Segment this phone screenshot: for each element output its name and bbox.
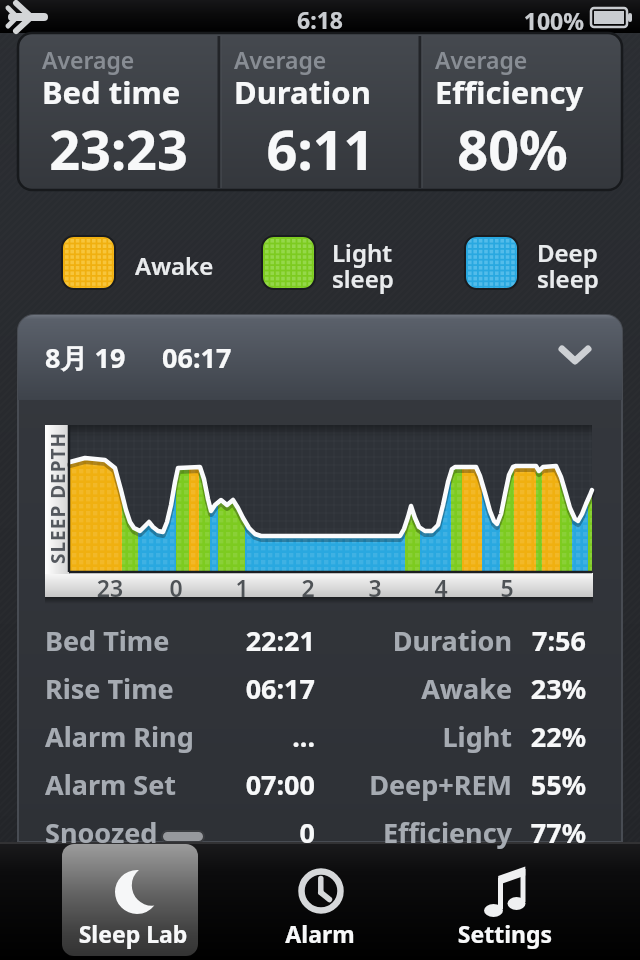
staticText: Snoozed	[45, 814, 158, 851]
staticText: 0	[151, 572, 201, 603]
staticText: Average	[435, 44, 528, 75]
staticText: 07:00	[185, 766, 315, 803]
button[interactable]: Sleep Lab	[62, 844, 198, 956]
staticText: Bed time	[42, 71, 181, 113]
staticText: Alarm	[250, 918, 390, 949]
staticText: 22:21	[185, 622, 315, 659]
staticText: 5	[482, 572, 532, 603]
staticText: 22%	[500, 718, 586, 755]
staticText: Deep sleep	[537, 236, 599, 295]
button[interactable]: Settings	[435, 844, 575, 956]
staticText: 80%	[412, 112, 613, 186]
staticText: 6:11	[220, 112, 421, 186]
staticText: Awake	[135, 249, 214, 282]
staticText: Sleep Lab	[65, 918, 198, 949]
staticText: Awake	[340, 670, 512, 707]
staticText: Rise Time	[45, 670, 174, 707]
staticText: Deep+REM	[340, 766, 512, 803]
staticText: 2	[283, 572, 333, 603]
staticText: Light sleep	[332, 236, 394, 295]
staticText: Bed Time	[45, 622, 170, 659]
staticText: 23:23	[18, 112, 219, 186]
staticText: Average	[234, 44, 327, 75]
staticText: 100%	[512, 5, 584, 36]
staticText: Alarm Ring	[45, 718, 194, 755]
staticText: Duration	[340, 622, 512, 659]
staticText: Light	[340, 718, 512, 755]
staticText: 23%	[500, 670, 586, 707]
staticText: Settings	[435, 918, 575, 949]
staticText: ...	[185, 718, 315, 755]
staticText: 6:18	[270, 4, 370, 35]
staticText: 77%	[500, 814, 586, 851]
staticText: Efficiency	[435, 71, 584, 113]
staticText: 8月 19	[45, 339, 126, 376]
staticText: Efficiency	[340, 814, 512, 851]
staticText: 06:17	[162, 339, 232, 376]
staticText: 23	[85, 572, 135, 603]
button[interactable]: 8月 19	[18, 315, 622, 400]
staticText: Duration	[234, 71, 371, 113]
button[interactable]: Alarm	[250, 844, 390, 956]
staticText: 55%	[500, 766, 586, 803]
staticText: 4	[416, 572, 466, 603]
staticText: 7:56	[500, 622, 586, 659]
staticText: Average	[42, 44, 135, 75]
staticText: Alarm Set	[45, 766, 177, 803]
staticText: 0	[185, 814, 315, 851]
staticText: SLEEP DEPTH	[45, 418, 69, 578]
staticText: 3	[350, 572, 400, 603]
staticText: 06:17	[185, 670, 315, 707]
staticText: 1	[217, 572, 267, 603]
